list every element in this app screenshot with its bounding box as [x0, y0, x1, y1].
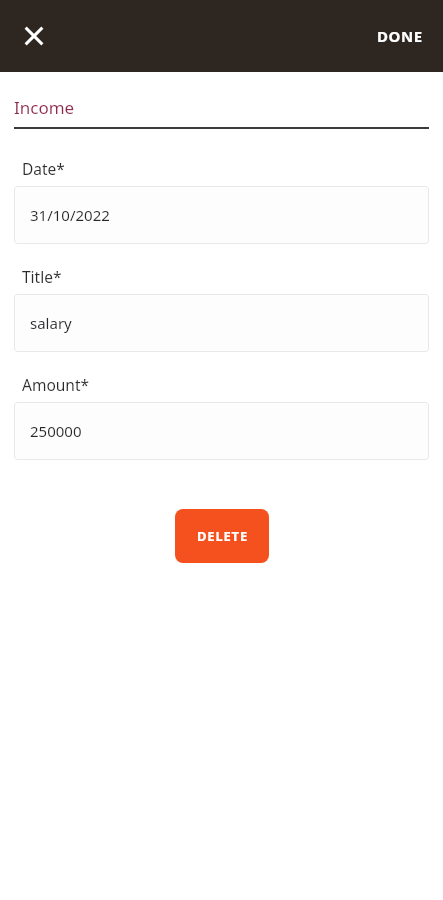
staticText: salary	[30, 313, 72, 333]
button[interactable]: 250000	[14, 402, 429, 460]
staticText: 31/10/2022	[30, 205, 110, 225]
staticText: Income	[14, 96, 75, 119]
staticText: Amount*	[22, 374, 90, 395]
button[interactable]: DELETE	[175, 509, 269, 563]
staticText: DONE	[377, 26, 423, 46]
button[interactable]: DONE	[367, 18, 433, 54]
staticText: 250000	[30, 421, 82, 441]
button[interactable]: 31/10/2022	[14, 186, 429, 244]
button[interactable]: salary	[14, 294, 429, 352]
staticText: Date*	[22, 158, 65, 179]
button[interactable]: Close	[14, 16, 54, 56]
staticText: Title*	[22, 266, 62, 287]
staticText: DELETE	[197, 527, 248, 545]
